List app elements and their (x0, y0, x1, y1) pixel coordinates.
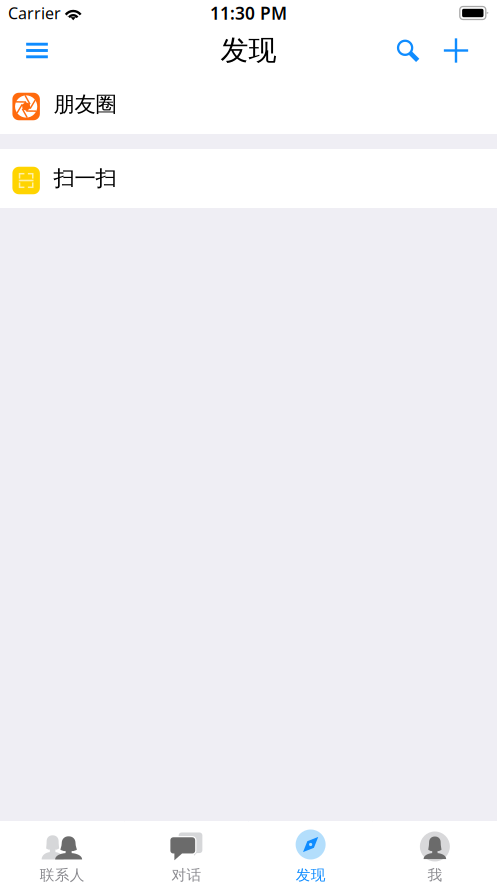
staticText: 扫一扫 (53, 165, 116, 192)
button[interactable]: 扫一扫 (0, 149, 497, 208)
button[interactable]: Menu (15, 26, 59, 75)
staticText: 朋友圈 (53, 91, 116, 118)
button[interactable]: 朋友圈 (0, 75, 497, 134)
staticText: Carrier (8, 2, 61, 24)
button[interactable]: 发现 (248, 822, 373, 883)
button[interactable]: Compose (434, 26, 478, 75)
button[interactable]: 联系人 (0, 822, 124, 883)
button[interactable]: 对话 (124, 822, 248, 883)
staticText: 11:30 PM (210, 1, 287, 24)
staticText: 我 (427, 866, 442, 883)
staticText: 发现 (296, 866, 326, 883)
staticText: 对话 (171, 866, 201, 883)
button[interactable]: 我 (373, 822, 497, 883)
staticText: 发现 (220, 33, 276, 68)
button[interactable]: Search (386, 26, 430, 75)
staticText: 联系人 (40, 866, 85, 883)
